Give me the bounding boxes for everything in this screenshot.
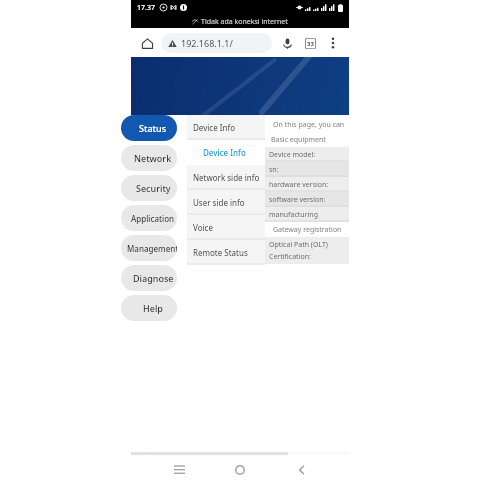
staticText: Device Info bbox=[193, 122, 235, 133]
staticText: Device Info bbox=[203, 147, 246, 158]
staticText: Management bbox=[127, 243, 177, 254]
button[interactable]: hardware version: bbox=[265, 177, 349, 192]
staticText: Diagnose bbox=[133, 272, 174, 284]
button[interactable]: Home bbox=[226, 456, 254, 484]
staticText: Gateway registration info bbox=[273, 225, 349, 235]
button[interactable]: Device model: bbox=[265, 147, 349, 162]
staticText: On this page, you can qu bbox=[273, 120, 349, 130]
button[interactable]: Management bbox=[121, 235, 177, 261]
button[interactable]: Optical Path (OLT) bbox=[265, 237, 349, 264]
button[interactable]: Tabs bbox=[301, 34, 319, 52]
button[interactable]: Security bbox=[121, 175, 177, 201]
staticText: Status bbox=[139, 122, 167, 134]
staticText: User side info bbox=[193, 197, 245, 208]
staticText: Application bbox=[131, 213, 175, 224]
button[interactable]: manufacturing information bbox=[265, 207, 349, 222]
staticText: Device model: bbox=[269, 150, 316, 160]
staticText: Network bbox=[134, 152, 172, 164]
button[interactable]: Recent apps bbox=[165, 456, 193, 484]
staticText: Remote Status bbox=[193, 247, 248, 258]
button[interactable]: Remote Status bbox=[187, 240, 265, 265]
button[interactable]: Device Info bbox=[187, 115, 265, 140]
button[interactable]: Help bbox=[121, 295, 177, 321]
staticText: Security bbox=[136, 182, 171, 194]
staticText: 17.37 bbox=[137, 3, 155, 13]
button[interactable]: Back bbox=[288, 456, 316, 484]
staticText: software version: bbox=[269, 195, 326, 205]
staticText: Tidak ada koneksi internet bbox=[201, 17, 288, 27]
button[interactable]: sn: bbox=[265, 162, 349, 177]
button[interactable]: Status bbox=[121, 115, 177, 141]
staticText: Network side info bbox=[193, 172, 260, 183]
button[interactable]: software version: bbox=[265, 192, 349, 207]
button[interactable]: Voice search bbox=[278, 34, 296, 52]
button[interactable]: Network side info bbox=[187, 165, 265, 190]
staticText: Optical Path (OLT) bbox=[269, 240, 328, 250]
staticText: sn: bbox=[269, 165, 279, 175]
staticText: hardware version: bbox=[269, 180, 329, 190]
button[interactable]: 192.168.1.1/webcmc bbox=[161, 33, 272, 53]
button[interactable]: More options bbox=[324, 34, 342, 52]
button[interactable]: Diagnose bbox=[121, 265, 177, 291]
button[interactable]: Network bbox=[121, 145, 177, 171]
staticText: Voice bbox=[193, 222, 213, 233]
button[interactable]: Home bbox=[138, 34, 156, 52]
button[interactable]: Device Info bbox=[187, 140, 265, 165]
staticText: 33 bbox=[307, 40, 314, 48]
staticText: Help bbox=[143, 302, 163, 314]
staticText: Basic equipment informa bbox=[271, 135, 349, 145]
button[interactable]: Application bbox=[121, 205, 177, 231]
staticText: manufacturing information bbox=[269, 210, 349, 220]
staticText: 192.168.1.1/webcmc bbox=[181, 37, 265, 49]
staticText: Certification: bbox=[269, 252, 311, 262]
button[interactable]: User side info bbox=[187, 190, 265, 215]
button[interactable]: Voice bbox=[187, 215, 265, 240]
